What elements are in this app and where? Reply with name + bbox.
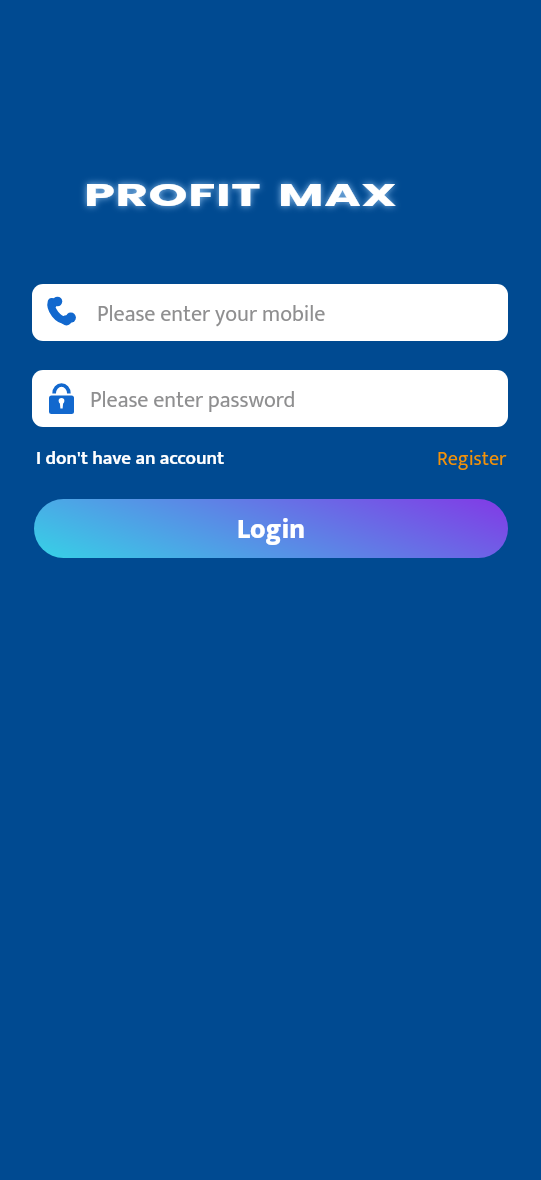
button[interactable]: Register <box>437 442 511 474</box>
staticText: I don't have an account <box>36 443 225 475</box>
other: Password <box>49 384 74 414</box>
staticText: PROFIT <box>84 173 262 216</box>
staticText: Please enter password <box>90 382 296 419</box>
button[interactable]: Login <box>34 499 508 558</box>
other: Mobile number <box>49 298 75 326</box>
staticText: Register <box>437 442 507 474</box>
button[interactable]: Password <box>32 370 508 427</box>
staticText: Login <box>237 507 306 553</box>
button[interactable]: I don't have an account <box>36 443 236 475</box>
staticText: MAX <box>278 173 398 216</box>
button[interactable]: Mobile number <box>32 284 508 341</box>
staticText: Please enter your mobile <box>97 296 326 333</box>
